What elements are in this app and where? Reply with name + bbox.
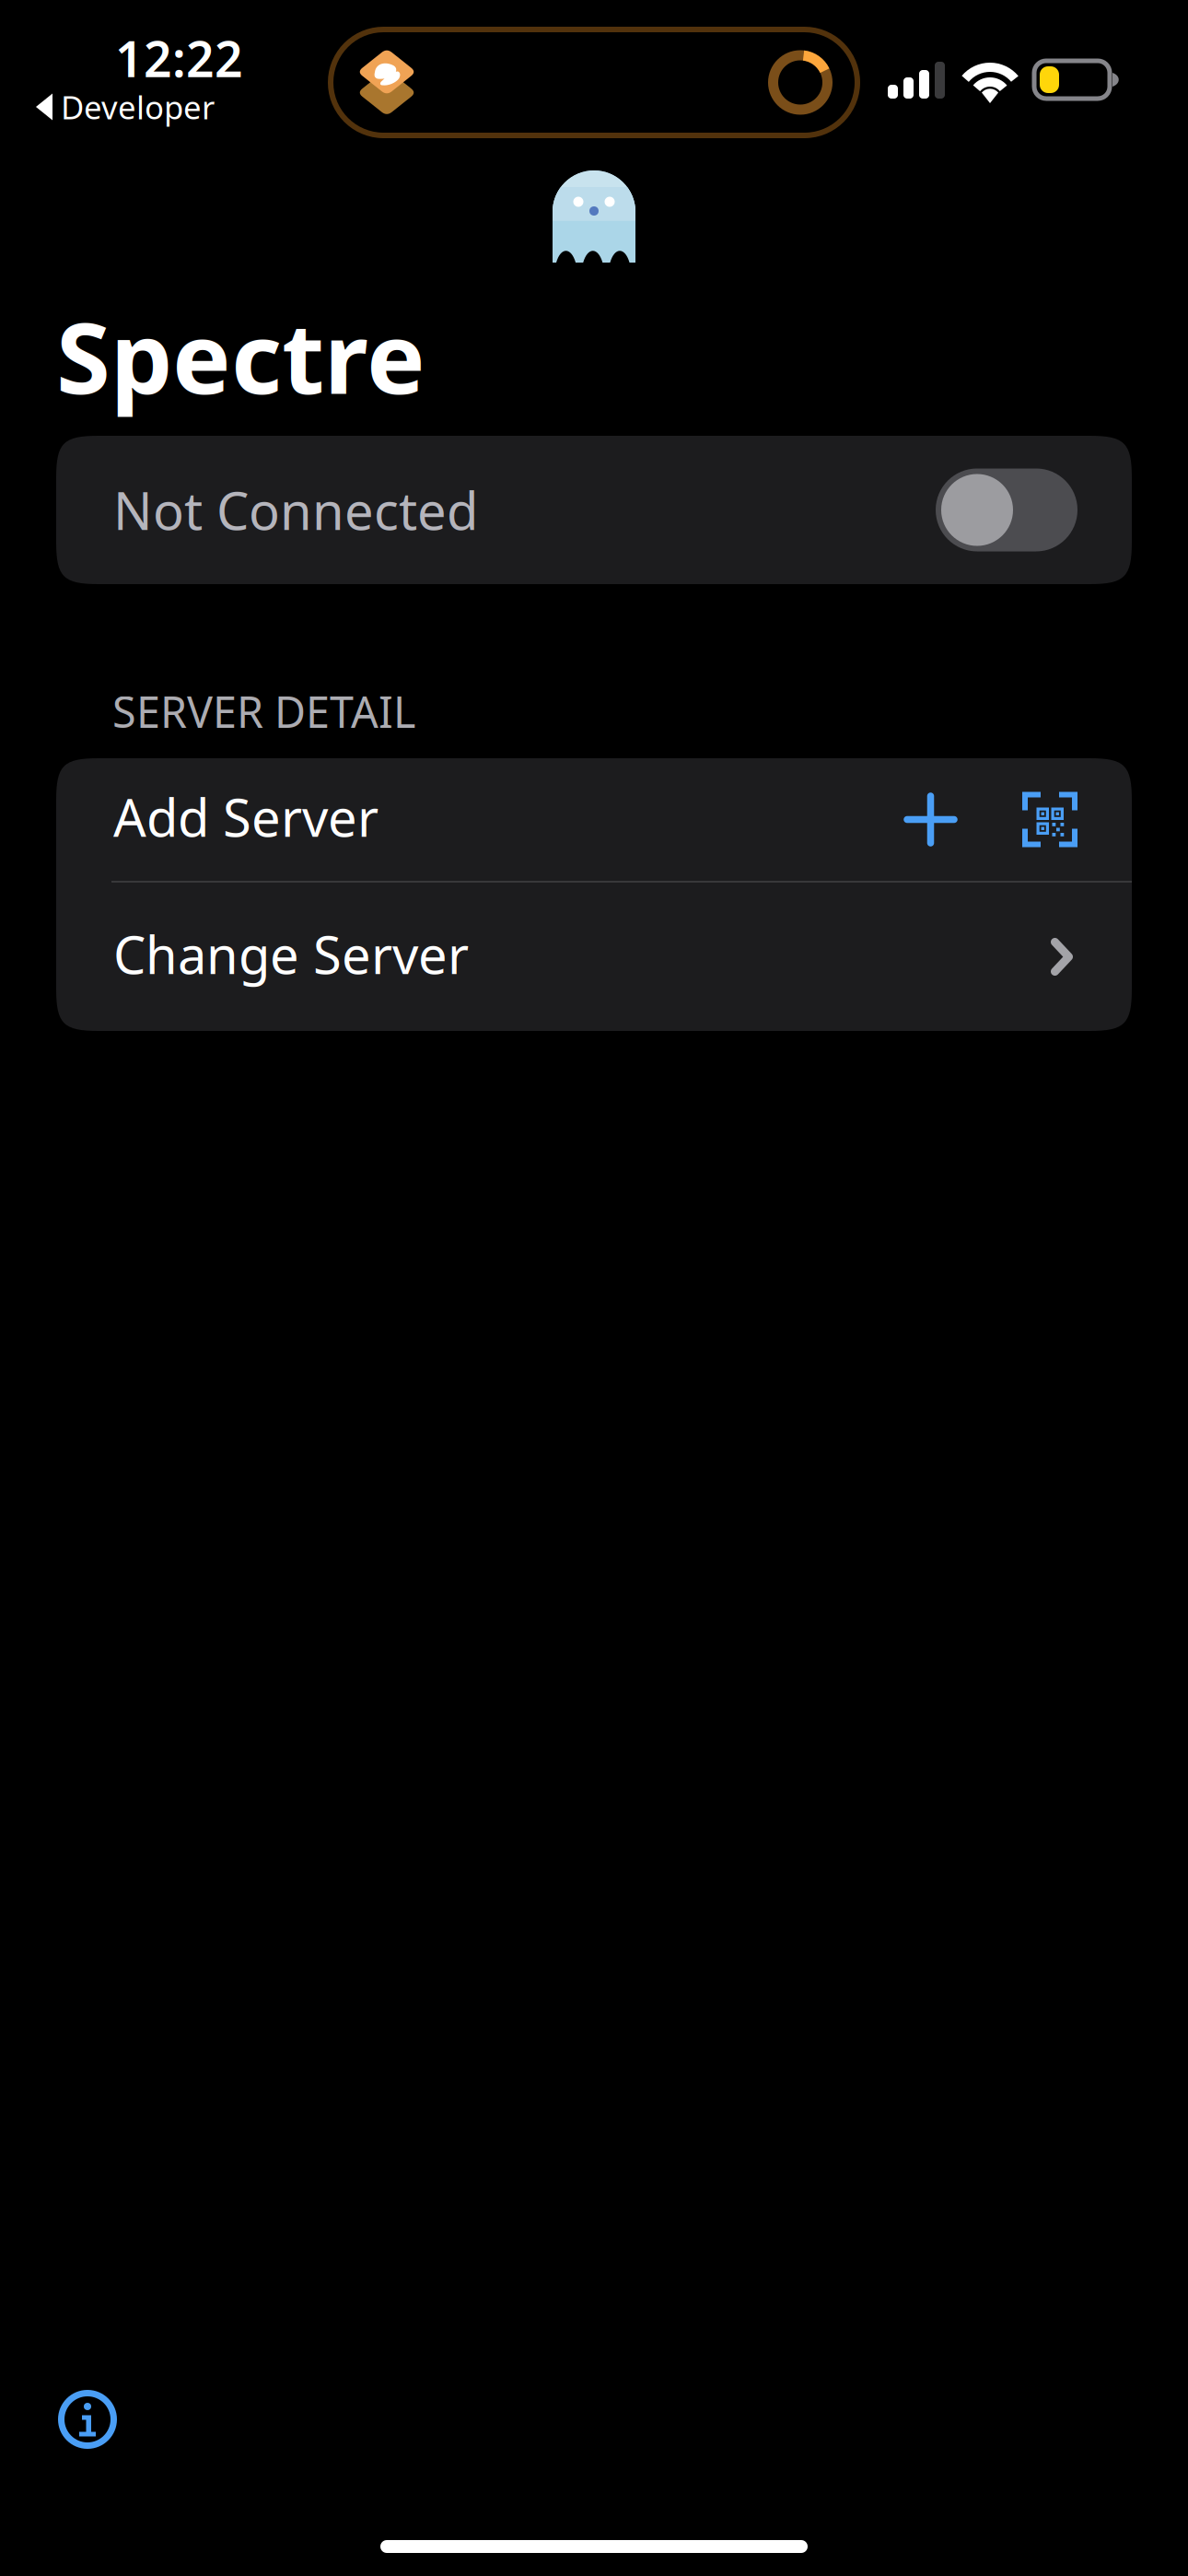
staticText: Not Connected (113, 476, 478, 544)
staticText: 12:22 (115, 25, 243, 91)
staticText: Add Server (113, 782, 379, 851)
button[interactable]: Change Server (56, 883, 1132, 1031)
staticText: Developer (61, 86, 215, 128)
button[interactable]: Not Connected (56, 436, 1132, 584)
button[interactable]: Add Server (56, 758, 1132, 881)
staticText: SERVER DETAIL (112, 683, 415, 740)
staticText: Change Server (113, 920, 469, 988)
button[interactable]: About (0, 2390, 117, 2449)
button[interactable]: Developer (0, 85, 215, 129)
staticText: Spectre (56, 290, 425, 421)
